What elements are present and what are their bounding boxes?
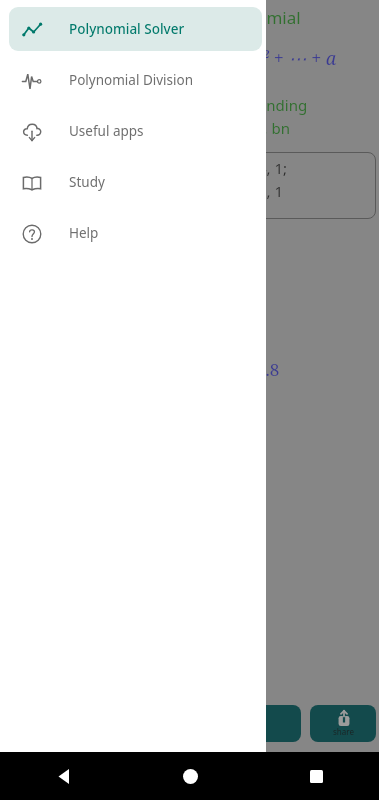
staticText: Useful apps xyxy=(69,122,144,140)
staticText: Help xyxy=(69,224,99,242)
staticText: Polynomial Solver xyxy=(69,20,185,38)
staticText: 2, 1 xyxy=(258,181,284,201)
button[interactable]: Help xyxy=(9,211,262,255)
button[interactable]: 4, 1; xyxy=(252,152,376,219)
button[interactable]: Recent apps xyxy=(293,753,339,799)
staticText: 4, 1; xyxy=(258,158,288,178)
button[interactable]: Share xyxy=(310,705,376,742)
staticText: = 0.8 xyxy=(242,358,280,381)
button[interactable]: Polynomial Division xyxy=(9,58,262,102)
button[interactable]: Study xyxy=(9,160,262,204)
staticText: b1, b2, ..., bn xyxy=(200,118,290,138)
button[interactable]: Polynomial Solver xyxy=(9,7,262,51)
button[interactable]: Print xyxy=(248,705,301,742)
staticText: in ascending xyxy=(218,95,308,115)
staticText: Study xyxy=(69,173,105,191)
staticText: Polynomial Division xyxy=(69,71,194,89)
button[interactable]: Back xyxy=(41,753,87,799)
button[interactable]: Home xyxy=(167,753,213,799)
staticText: share xyxy=(333,726,354,737)
button[interactable]: Useful apps xyxy=(9,109,262,153)
staticText: x² + ⋯ + a xyxy=(252,46,337,71)
staticText: Polynomial xyxy=(212,6,301,29)
